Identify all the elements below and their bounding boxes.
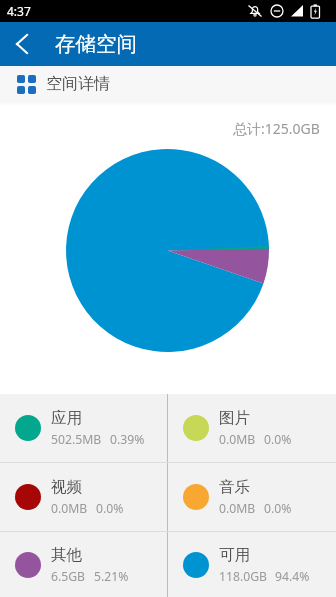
staticText: 0.0%	[264, 431, 292, 448]
staticText: 空间详情	[46, 74, 110, 94]
staticText: 可用	[219, 545, 250, 565]
button[interactable]: 视频	[0, 463, 167, 531]
button[interactable]: 音乐	[168, 463, 336, 531]
staticText: 0.0MB	[219, 500, 256, 517]
staticText: 存储空间	[55, 31, 137, 57]
staticText: 总计:125.0GB	[233, 119, 320, 138]
staticText: 0.39%	[110, 431, 145, 448]
staticText: 图片	[219, 408, 250, 428]
staticText: 502.5MB	[51, 431, 102, 448]
staticText: 应用	[51, 408, 82, 428]
staticText: 0.0MB	[51, 500, 88, 517]
button[interactable]: Back	[0, 22, 44, 66]
staticText: 视频	[51, 477, 82, 497]
staticText: 音乐	[219, 477, 250, 497]
staticText: 4:37	[7, 3, 31, 19]
staticText: 94.4%	[275, 568, 310, 585]
button[interactable]: 空间详情	[0, 66, 336, 102]
button[interactable]: 其他	[0, 532, 167, 597]
button[interactable]: 可用	[168, 532, 336, 597]
staticText: 0.0%	[96, 500, 124, 517]
staticText: 0.0%	[264, 500, 292, 517]
staticText: 0.0MB	[219, 431, 256, 448]
button[interactable]: 应用	[0, 394, 167, 462]
button[interactable]: 图片	[168, 394, 336, 462]
staticText: 6.5GB	[51, 568, 86, 585]
staticText: 其他	[51, 545, 82, 565]
staticText: 118.0GB	[219, 568, 267, 585]
staticText: 5.21%	[94, 568, 129, 585]
